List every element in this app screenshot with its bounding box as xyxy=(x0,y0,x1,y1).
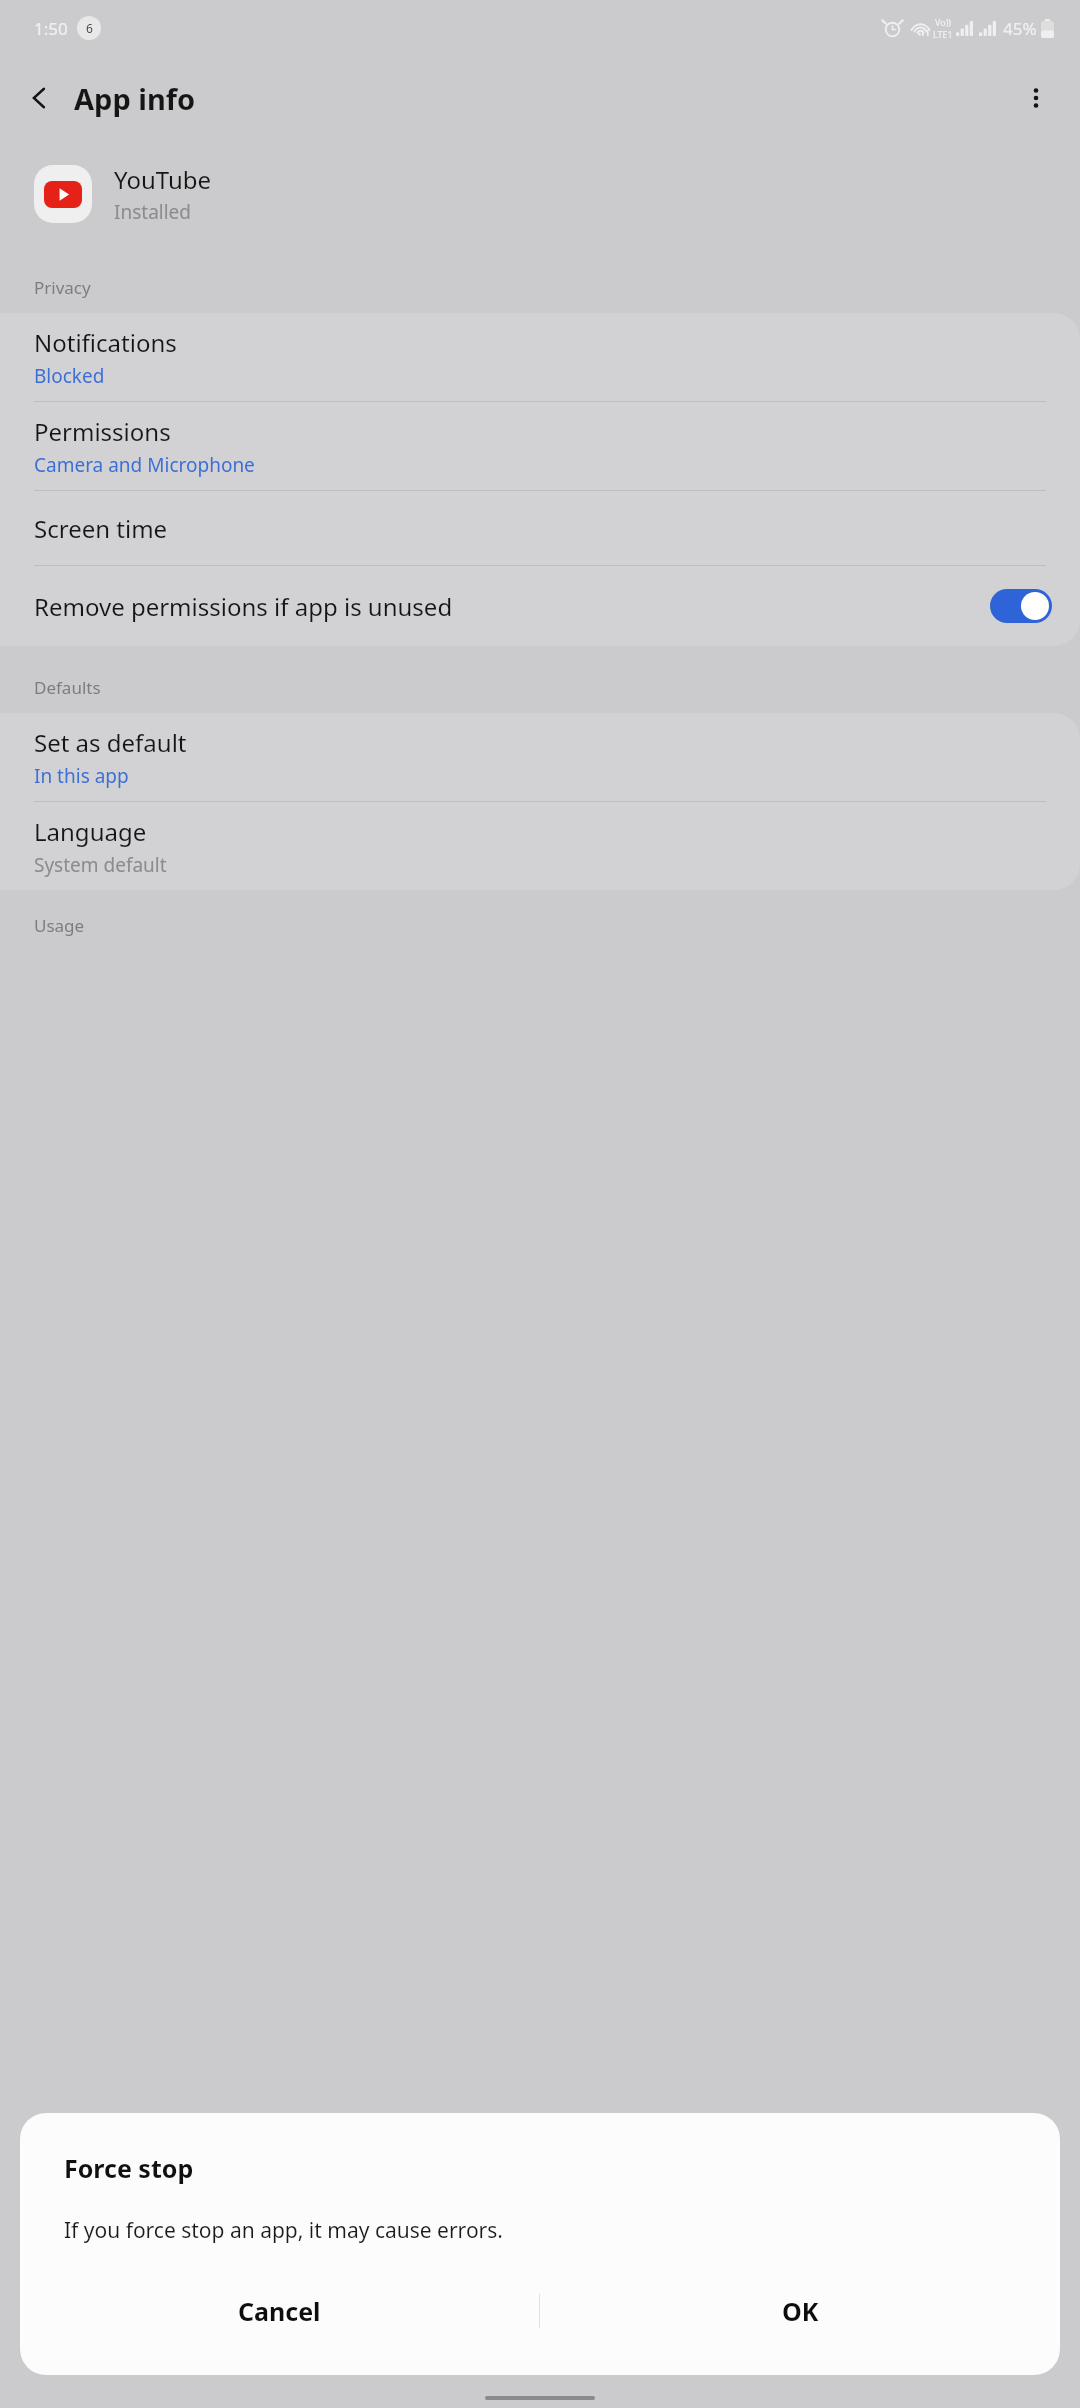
staticText: Vo)) xyxy=(935,16,952,28)
staticText: LTE1 xyxy=(933,28,953,40)
staticText: YouTube xyxy=(114,163,212,196)
staticText: Remove permissions if app is unused xyxy=(34,590,453,623)
staticText: Defaults xyxy=(34,676,101,699)
button[interactable]: Screen time xyxy=(0,491,1080,565)
button[interactable]: Notifications xyxy=(0,313,1080,401)
staticText: 6 xyxy=(86,20,93,36)
staticText: Camera and Microphone xyxy=(34,452,255,478)
button[interactable]: Permissions xyxy=(0,402,1080,490)
staticText: Blocked xyxy=(34,363,105,389)
staticText: Privacy xyxy=(34,276,91,299)
staticText: Screen time xyxy=(34,512,168,545)
button[interactable]: Disable xyxy=(477,2343,564,2378)
staticText: Permissions xyxy=(34,415,171,448)
button[interactable]: Force stop xyxy=(767,2343,878,2378)
staticText: Set as default xyxy=(34,726,187,759)
staticText: Force stop xyxy=(64,2151,194,2185)
staticText: If you force stop an app, it may cause e… xyxy=(64,2216,503,2245)
button[interactable]: Cancel xyxy=(20,2294,539,2328)
staticText: Usage xyxy=(34,914,85,937)
staticText: 45% xyxy=(1003,17,1037,40)
staticText: 1:50 xyxy=(34,17,68,40)
staticText: Installed xyxy=(114,199,192,225)
staticText: Cancel xyxy=(238,2294,321,2328)
button[interactable]: Set as default xyxy=(0,713,1080,801)
button[interactable]: Remove permissions if app is unused xyxy=(0,566,1080,646)
staticText: OK xyxy=(782,2294,819,2328)
button[interactable]: Language xyxy=(0,802,1080,890)
staticText: Language xyxy=(34,815,147,848)
staticText: In this app xyxy=(34,763,129,789)
button[interactable]: Back xyxy=(14,72,66,124)
button[interactable]: YouTube xyxy=(0,140,1080,248)
staticText: App info xyxy=(74,79,196,118)
button[interactable]: More options xyxy=(1010,72,1062,124)
staticText: System default xyxy=(34,852,167,878)
button[interactable]: OK xyxy=(540,2294,1060,2328)
staticText: Notifications xyxy=(34,326,177,359)
button[interactable]: Remove permissions toggle xyxy=(990,589,1052,623)
button[interactable]: Open xyxy=(203,2343,275,2378)
